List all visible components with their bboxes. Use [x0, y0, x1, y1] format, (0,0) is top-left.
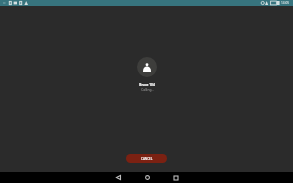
- staticText: Calling…: [141, 88, 154, 92]
- staticText: Bruce 104: [139, 83, 155, 87]
- button[interactable]: Recents: [164, 172, 188, 183]
- button[interactable]: CANCEL: [126, 154, 167, 163]
- button[interactable]: Back: [106, 172, 130, 183]
- button[interactable]: Home: [135, 172, 159, 183]
- staticText: 14:05: [281, 1, 290, 5]
- staticText: CANCEL: [141, 157, 153, 161]
